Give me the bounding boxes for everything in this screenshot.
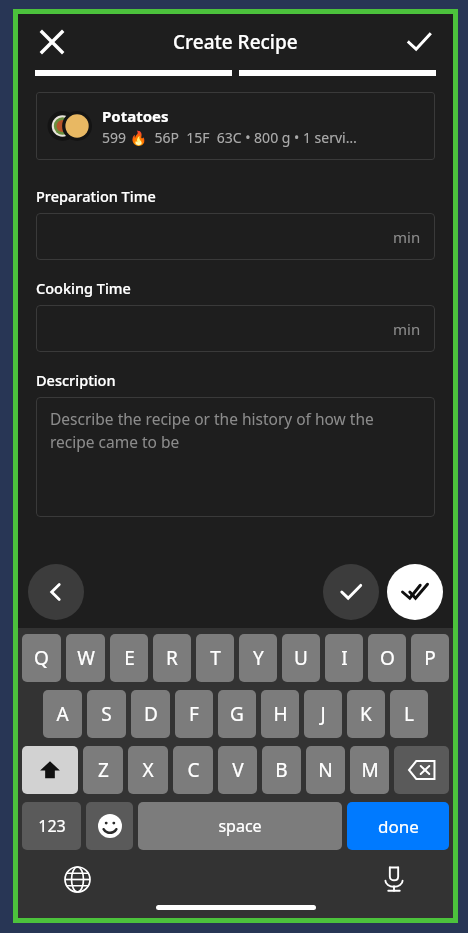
button[interactable]: C: [173, 746, 213, 794]
staticText: Preparation Time: [36, 186, 156, 206]
button[interactable]: min: [36, 305, 435, 352]
button[interactable]: Change keyboard language: [58, 860, 96, 898]
staticText: Description: [36, 370, 116, 390]
button[interactable]: X: [128, 746, 168, 794]
button[interactable]: Potatoes: [36, 92, 435, 160]
button[interactable]: F: [175, 690, 213, 738]
staticText: T: [210, 645, 221, 671]
button[interactable]: Close: [28, 18, 76, 66]
staticText: L: [404, 701, 414, 727]
staticText: K: [360, 701, 372, 727]
button[interactable]: N: [306, 746, 345, 794]
button[interactable]: 123: [22, 802, 81, 850]
button[interactable]: O: [368, 634, 406, 682]
staticText: min: [393, 227, 421, 247]
button[interactable]: Confirm: [323, 564, 379, 620]
staticText: A: [56, 701, 69, 727]
staticText: Describe the recipe or the history of ho…: [50, 408, 421, 453]
button[interactable]: V: [218, 746, 257, 794]
staticText: I: [341, 645, 348, 671]
button[interactable]: S: [87, 690, 126, 738]
button[interactable]: min: [36, 213, 435, 260]
button[interactable]: M: [350, 746, 389, 794]
button[interactable]: Backspace: [394, 746, 449, 794]
button[interactable]: I: [325, 634, 363, 682]
staticText: Z: [98, 757, 109, 783]
button[interactable]: E: [110, 634, 148, 682]
button[interactable]: Shift: [22, 746, 78, 794]
staticText: done: [378, 815, 419, 838]
staticText: Create Recipe: [173, 29, 298, 55]
button[interactable]: G: [218, 690, 256, 738]
staticText: X: [142, 757, 154, 783]
button[interactable]: Y: [239, 634, 277, 682]
staticText: V: [232, 757, 244, 783]
staticText: Cooking Time: [36, 278, 131, 298]
staticText: space: [218, 815, 262, 837]
staticText: H: [273, 701, 288, 727]
staticText: P: [424, 645, 436, 671]
button[interactable]: Emoji: [86, 802, 133, 850]
staticText: C: [187, 757, 200, 783]
button[interactable]: Voice input: [375, 860, 413, 898]
button[interactable]: space: [138, 802, 342, 850]
staticText: O: [380, 645, 395, 671]
button[interactable]: J: [304, 690, 342, 738]
staticText: 599 🔥 56P 15F 63C • 800 g • 1 servi…: [102, 128, 357, 147]
button[interactable]: D: [131, 690, 170, 738]
staticText: 123: [38, 815, 66, 837]
staticText: Q: [34, 645, 49, 671]
button[interactable]: Done all: [387, 564, 443, 620]
staticText: E: [124, 645, 135, 671]
button[interactable]: Describe the recipe or the history of ho…: [36, 397, 435, 517]
button[interactable]: done: [347, 802, 449, 850]
button[interactable]: Z: [83, 746, 123, 794]
staticText: Y: [253, 645, 264, 671]
staticText: M: [361, 757, 379, 783]
button[interactable]: K: [347, 690, 385, 738]
staticText: R: [166, 645, 178, 671]
button[interactable]: H: [261, 690, 299, 738]
staticText: min: [393, 319, 421, 339]
staticText: S: [101, 701, 112, 727]
button[interactable]: T: [196, 634, 234, 682]
staticText: J: [320, 701, 326, 727]
button[interactable]: U: [282, 634, 320, 682]
staticText: F: [189, 701, 199, 727]
button[interactable]: A: [43, 690, 82, 738]
button[interactable]: Save: [395, 18, 443, 66]
button[interactable]: P: [411, 634, 449, 682]
button[interactable]: Q: [22, 634, 61, 682]
staticText: U: [294, 645, 308, 671]
staticText: W: [77, 645, 95, 671]
button[interactable]: R: [153, 634, 191, 682]
staticText: B: [275, 757, 288, 783]
button[interactable]: L: [390, 690, 428, 738]
staticText: N: [318, 757, 333, 783]
button[interactable]: Back: [28, 564, 84, 620]
staticText: G: [230, 701, 244, 727]
staticText: Potatoes: [102, 106, 169, 126]
button[interactable]: B: [262, 746, 301, 794]
button[interactable]: W: [66, 634, 105, 682]
staticText: D: [144, 701, 158, 727]
